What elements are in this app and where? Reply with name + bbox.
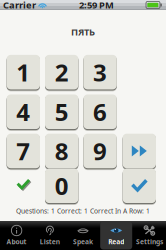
- staticText: 6: [93, 96, 107, 128]
- button[interactable]: 7: [7, 132, 40, 169]
- staticText: 1: [16, 56, 30, 88]
- staticText: 7: [16, 135, 30, 167]
- button[interactable]: 2: [45, 54, 78, 91]
- staticText: 9: [93, 135, 107, 167]
- staticText: 2:59 PM: [79, 0, 114, 11]
- staticText: 2: [55, 56, 69, 88]
- staticText: 0: [55, 170, 69, 202]
- button[interactable]: Submit: [123, 167, 156, 204]
- button[interactable]: Settings: [133, 221, 166, 250]
- staticText: 4: [16, 96, 30, 128]
- button[interactable]: 6: [83, 93, 117, 130]
- button[interactable]: 8: [45, 132, 78, 169]
- staticText: Read: [108, 237, 124, 246]
- button[interactable]: Listen: [33, 221, 66, 250]
- button[interactable]: 0: [45, 167, 78, 204]
- staticText: Settings: [136, 237, 163, 246]
- button[interactable]: Read: [100, 221, 133, 250]
- staticText: 5: [55, 96, 69, 128]
- staticText: 3: [93, 56, 107, 88]
- staticText: About: [7, 237, 27, 246]
- button[interactable]: Speak: [66, 221, 100, 250]
- staticText: Speak: [73, 237, 93, 246]
- staticText: ПЯТЬ: [71, 26, 95, 38]
- staticText: 8: [55, 135, 69, 167]
- staticText: Questions: 1 Correct: 1 Correct In A Row…: [16, 207, 150, 215]
- button[interactable]: About: [0, 221, 33, 250]
- button[interactable]: 3: [83, 54, 117, 91]
- button[interactable]: Next: [123, 132, 156, 169]
- button[interactable]: 9: [83, 132, 117, 169]
- button[interactable]: 5: [45, 93, 78, 130]
- button[interactable]: 1: [7, 54, 40, 91]
- button[interactable]: 4: [7, 93, 40, 130]
- button[interactable]: Correct: [7, 167, 40, 202]
- staticText: Listen: [40, 237, 60, 246]
- staticText: Carrier: [3, 0, 36, 11]
